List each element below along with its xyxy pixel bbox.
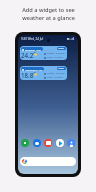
- staticText: 5:02 pm: [56, 72, 65, 75]
- staticText: Brisbane, QLD: [25, 48, 42, 51]
- staticText: Sunset: [47, 72, 55, 75]
- staticText: Today: [58, 67, 65, 70]
- button[interactable]: Melbourne, VIC: [20, 66, 67, 80]
- button[interactable]: Play Store: [56, 139, 64, 147]
- button[interactable]: Phone: [21, 139, 29, 147]
- staticText: 18.8°: [21, 71, 36, 79]
- staticText: Today: [58, 47, 65, 50]
- staticText: 12 km/h: [54, 76, 63, 79]
- staticText: Wind: [47, 76, 53, 79]
- staticText: weather at a glance: [22, 14, 75, 22]
- button[interactable]: Brisbane, QLD: [20, 46, 67, 60]
- staticText: 12 km/h: [54, 56, 63, 59]
- button[interactable]: Contacts: [67, 139, 75, 147]
- staticText: Melbourne, VIC: [25, 68, 43, 71]
- staticText: Add a widget to see: [22, 6, 75, 14]
- button[interactable]: Messages: [33, 139, 41, 147]
- staticText: 5:02 pm: [56, 52, 65, 55]
- staticText: Wind: [47, 56, 53, 59]
- button[interactable]: Search: [20, 157, 76, 166]
- staticText: Sunset: [47, 52, 55, 55]
- button[interactable]: Gmail: [44, 139, 52, 147]
- staticText: 9:30 Wed, 24 Jul: [21, 37, 44, 41]
- staticText: 24.2°: [21, 51, 36, 59]
